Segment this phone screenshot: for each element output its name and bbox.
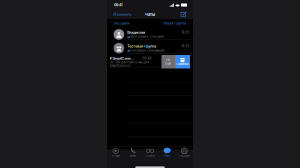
staticText: Тестовая группа (127, 44, 156, 48)
staticText: Все готово, спасибо (131, 35, 164, 38)
staticText: 10:35 (182, 31, 190, 34)
button[interactable]: Новая группа (163, 20, 186, 27)
button[interactable]: Тестовая группа (107, 41, 193, 55)
button[interactable]: Настройки (176, 147, 193, 158)
button[interactable]: Рассылки (114, 20, 130, 27)
staticText: Чаты (164, 154, 170, 157)
button[interactable]: Контакты (141, 147, 159, 158)
staticText: Контакты (145, 154, 155, 157)
staticText: # SmartConnect (109, 56, 134, 61)
staticText: 09:41 (114, 3, 123, 7)
button[interactable]: Архивировать (175, 55, 190, 69)
staticText: Изменить (114, 12, 132, 17)
button[interactable]: Новое сообщение (180, 11, 186, 18)
staticText: ок: Эту рассылку мы для (109, 61, 149, 64)
staticText: Владислав (127, 30, 145, 35)
staticText: 10:20 (182, 44, 190, 48)
button[interactable]: Изменить (114, 11, 132, 18)
staticText: Архивировать (176, 63, 189, 65)
staticText: SmartConnect (109, 64, 130, 67)
button[interactable]: Владислав (107, 28, 193, 41)
staticText: Звонки (130, 154, 136, 157)
button[interactable]: Звонки (124, 147, 141, 158)
button[interactable]: Чаты (159, 147, 176, 158)
staticText: 09:48 (142, 57, 151, 60)
button[interactable]: Истории (107, 147, 124, 158)
staticText: Ещё (165, 62, 171, 65)
staticText: Новая группа (163, 21, 186, 25)
staticText: Чаты (145, 12, 155, 17)
staticText: Настройки (179, 154, 189, 157)
staticText: Рассылки (114, 21, 130, 25)
staticText: Тестовое сообщение (131, 49, 165, 52)
staticText: Истории (112, 154, 120, 157)
button[interactable]: Ещё (161, 55, 175, 69)
